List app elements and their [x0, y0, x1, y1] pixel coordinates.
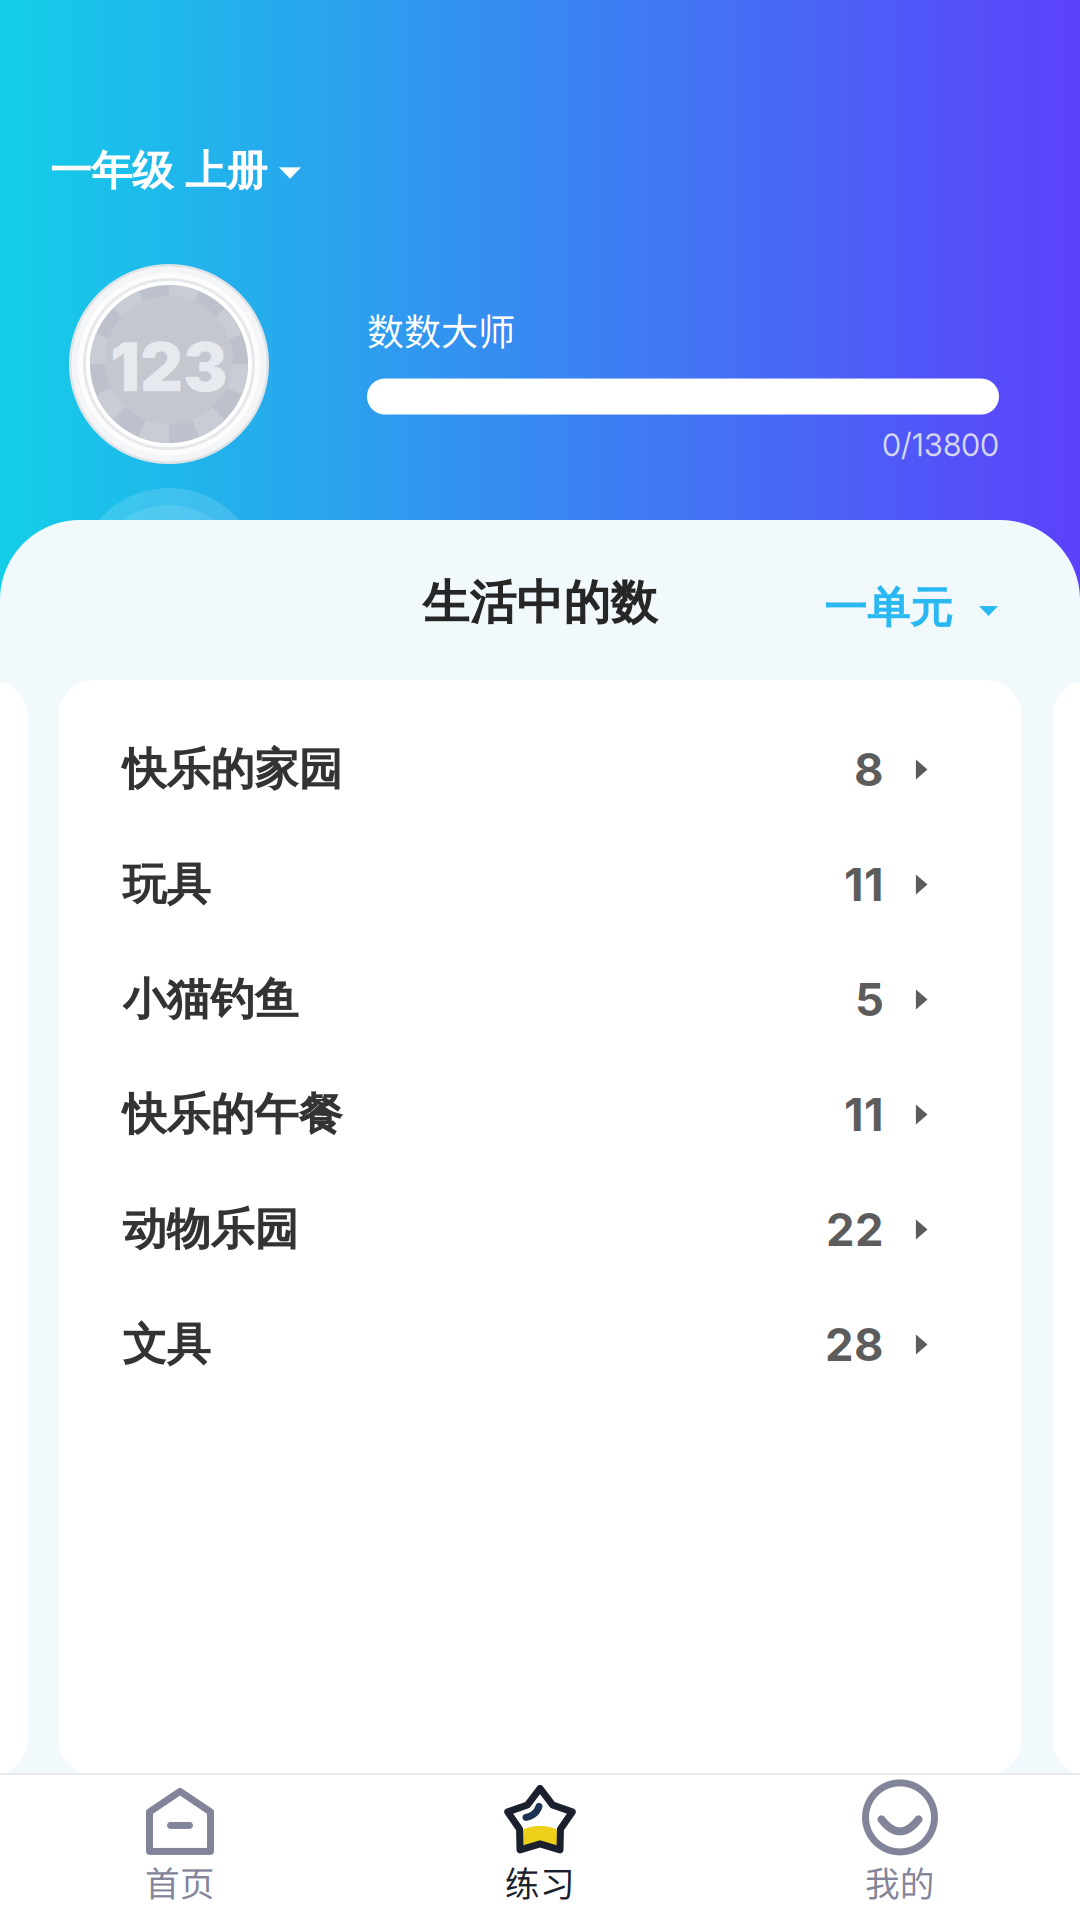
staticText: 练习 — [505, 1856, 575, 1907]
staticText: 5 — [855, 972, 884, 1027]
button[interactable]: 首页 — [0, 1775, 360, 1920]
staticText: 11 — [844, 1087, 884, 1142]
button[interactable]: 小猫钓鱼 — [58, 942, 1021, 1057]
staticText: 首页 — [145, 1856, 215, 1907]
staticText: 123 — [110, 327, 228, 407]
staticText: 22 — [826, 1202, 884, 1257]
staticText: 小猫钓鱼 — [122, 972, 298, 1027]
button[interactable]: 文具 — [58, 1287, 1021, 1402]
staticText: 动物乐园 — [122, 1202, 298, 1257]
button[interactable]: 一年级 上册 — [0, 129, 1080, 213]
staticText: 28 — [825, 1317, 884, 1372]
staticText: 一单元 — [824, 581, 953, 635]
staticText: 我的 — [865, 1856, 935, 1907]
button[interactable]: 一单元 — [824, 559, 998, 641]
button[interactable]: 玩具 — [58, 827, 1021, 942]
button[interactable]: 练习 — [360, 1775, 720, 1920]
staticText: 生活中的数 — [422, 574, 657, 632]
button[interactable]: 我的 — [720, 1775, 1080, 1920]
staticText: 一年级 上册 — [50, 145, 267, 197]
staticText: 文具 — [122, 1317, 210, 1372]
staticText: 数数大师 — [367, 302, 515, 357]
staticText: 8 — [854, 742, 884, 797]
button[interactable]: 快乐的午餐 — [58, 1057, 1021, 1172]
staticText: 快乐的午餐 — [122, 1087, 342, 1142]
staticText: 快乐的家园 — [122, 742, 342, 797]
button[interactable]: 快乐的家园 — [58, 712, 1021, 827]
button[interactable]: 动物乐园 — [58, 1172, 1021, 1287]
staticText: 玩具 — [122, 857, 210, 912]
staticText: 0/13800 — [882, 426, 999, 464]
staticText: 11 — [844, 857, 884, 912]
